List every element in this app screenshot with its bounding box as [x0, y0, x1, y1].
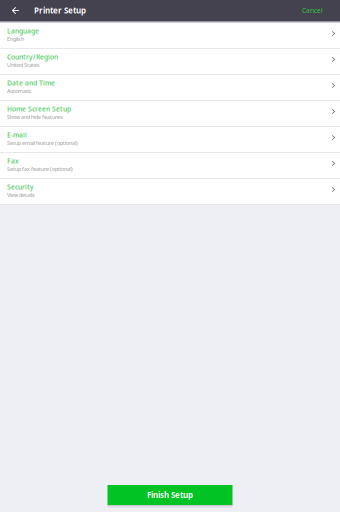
- staticText: Finish Setup: [147, 490, 193, 500]
- button[interactable]: Back: [0, 0, 31, 21]
- staticText: Printer Setup: [34, 5, 86, 16]
- staticText: Automatic: [7, 87, 32, 94]
- staticText: Home Screen Setup: [7, 104, 71, 113]
- button[interactable]: Fax: [0, 153, 340, 179]
- staticText: E-mail: [7, 130, 27, 139]
- staticText: Security: [7, 182, 34, 191]
- staticText: Show and hide features: [7, 113, 63, 120]
- button[interactable]: Language: [0, 23, 340, 49]
- staticText: Cancel: [302, 6, 323, 15]
- staticText: View details: [7, 191, 35, 198]
- staticText: Setup fax feature (optional): [7, 165, 73, 172]
- button[interactable]: Cancel: [292, 0, 340, 21]
- button[interactable]: E-mail: [0, 127, 340, 153]
- staticText: Fax: [7, 156, 19, 165]
- staticText: United States: [7, 61, 40, 68]
- staticText: English: [7, 35, 24, 42]
- staticText: Date and Time: [7, 78, 55, 87]
- staticText: Setup email feature (optional): [7, 139, 78, 146]
- button[interactable]: Security: [0, 179, 340, 205]
- button[interactable]: Home Screen Setup: [0, 101, 340, 127]
- button[interactable]: Country/Region: [0, 49, 340, 75]
- button[interactable]: Date and Time: [0, 75, 340, 101]
- staticText: Language: [7, 26, 39, 35]
- button[interactable]: Finish Setup: [107, 485, 232, 508]
- staticText: Country/Region: [7, 52, 58, 61]
